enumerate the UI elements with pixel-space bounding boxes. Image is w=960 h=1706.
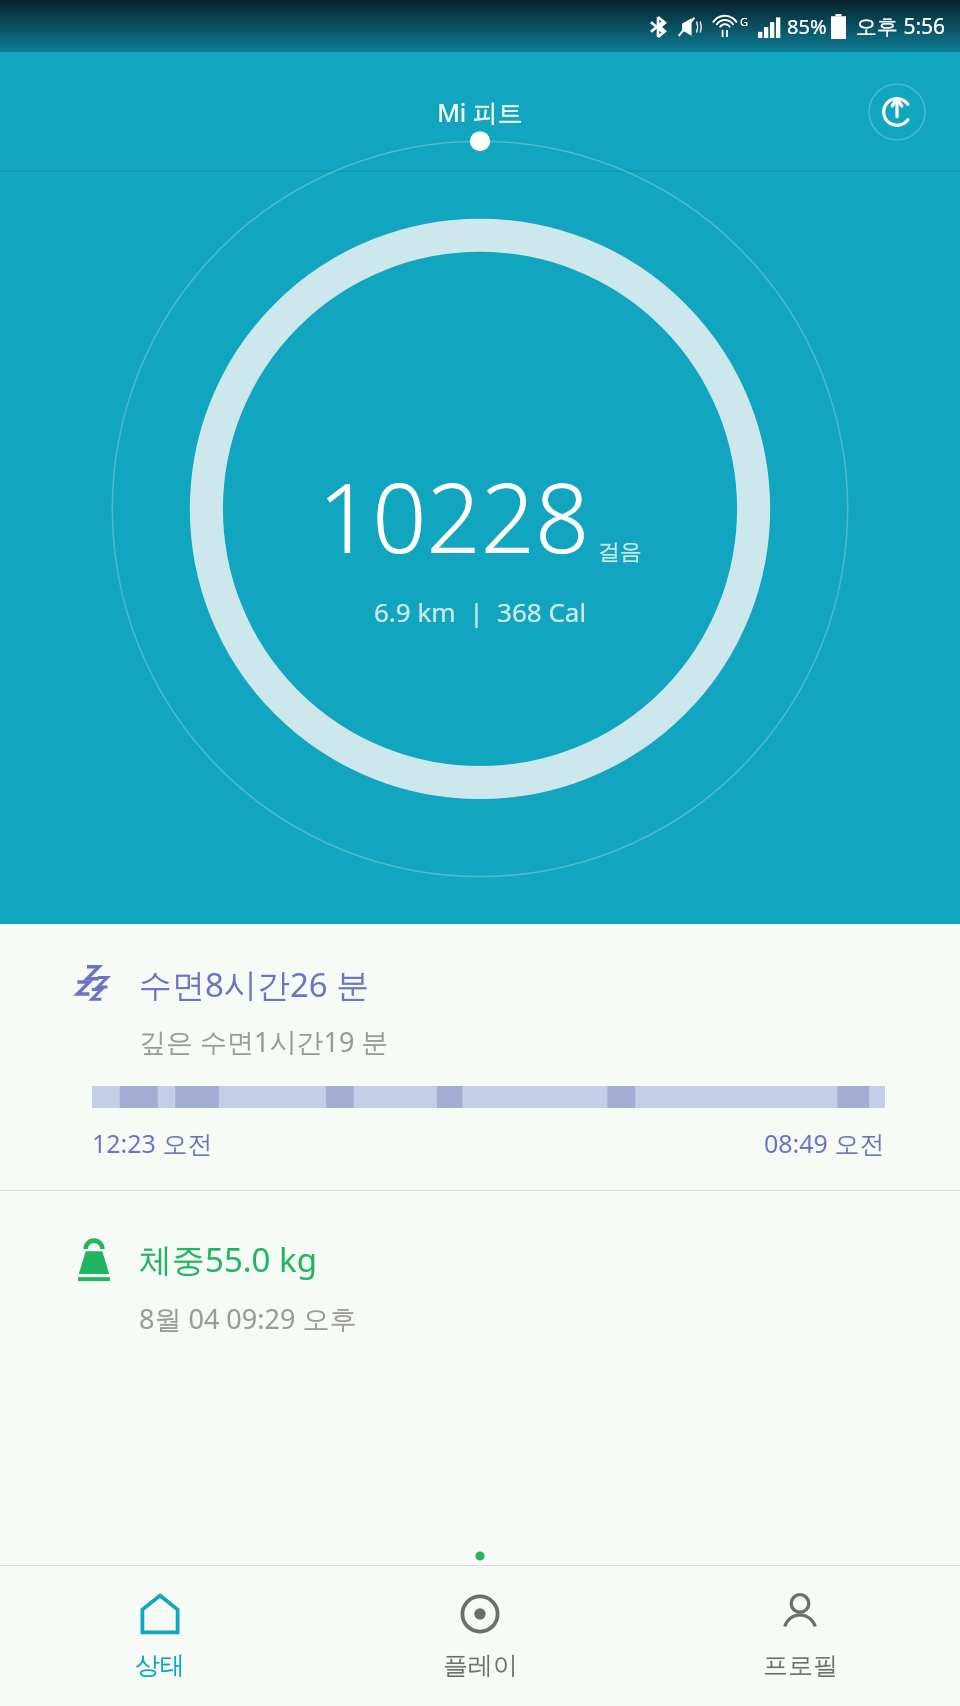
- button[interactable]: 상태: [0, 1566, 320, 1706]
- staticText: 10228: [318, 451, 590, 580]
- staticText: Mi 피트: [437, 95, 523, 129]
- staticText: 85%: [787, 13, 827, 40]
- staticText: 체중55.0 kg: [139, 1237, 317, 1282]
- button[interactable]: 플레이: [320, 1566, 640, 1706]
- staticText: 상태: [135, 1650, 185, 1681]
- staticText: 걸음: [598, 538, 642, 566]
- button[interactable]: 체중55.0 kg: [0, 1191, 960, 1357]
- button[interactable]: 프로필: [640, 1566, 960, 1706]
- staticText: 플레이: [443, 1650, 518, 1681]
- button[interactable]: 10228: [0, 172, 960, 924]
- staticText: 수면8시간26 분: [139, 962, 370, 1007]
- staticText: 오후 5:56: [856, 12, 946, 41]
- staticText: G: [740, 14, 749, 29]
- button[interactable]: Share: [868, 83, 926, 141]
- staticText: 08:49 오전: [764, 1126, 885, 1160]
- button[interactable]: 수면8시간26 분: [0, 924, 960, 1190]
- staticText: 8월 04 09:29 오후: [139, 1300, 357, 1337]
- staticText: 프로필: [763, 1650, 838, 1681]
- staticText: 6.9 km | 368 Cal: [374, 594, 587, 629]
- staticText: 12:23 오전: [92, 1126, 213, 1160]
- staticText: 깊은 수면1시간19 분: [139, 1023, 389, 1060]
